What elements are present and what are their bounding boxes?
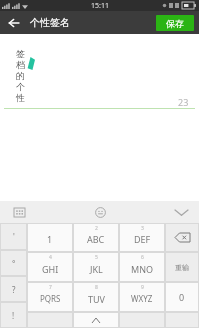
staticText: WXYZ xyxy=(131,293,153,304)
staticText: 15:11 xyxy=(91,1,109,11)
staticText: 5 xyxy=(95,254,98,261)
staticText: PQRS xyxy=(40,293,61,304)
staticText: 7 xyxy=(49,284,52,291)
staticText: 性 xyxy=(16,92,25,103)
staticText: 8 xyxy=(95,284,98,291)
staticText: 9 xyxy=(141,284,144,291)
button[interactable]: ° xyxy=(1,251,26,275)
staticText: 档 xyxy=(16,59,25,70)
button[interactable]: 7 xyxy=(28,283,72,311)
staticText: ° xyxy=(12,258,16,269)
button[interactable]: 9 xyxy=(120,283,164,311)
button[interactable]: Hide keyboard xyxy=(171,202,191,222)
staticText: 重输 xyxy=(175,263,189,272)
staticText: TUV xyxy=(88,293,105,305)
staticText: JKL xyxy=(90,263,103,275)
staticText: 0 xyxy=(179,291,185,303)
button[interactable]: ! xyxy=(1,303,26,327)
button[interactable]: 保存 xyxy=(156,15,194,31)
staticText: 个性签名 xyxy=(30,16,70,29)
staticText: DEF xyxy=(134,233,151,245)
button[interactable]: 8 xyxy=(74,283,118,311)
button[interactable]: Input method xyxy=(10,203,28,221)
staticText: ! xyxy=(12,310,15,321)
staticText: 1 xyxy=(47,233,53,245)
staticText: 个 xyxy=(16,81,25,92)
staticText: 6 xyxy=(141,254,144,261)
button[interactable] xyxy=(74,313,118,327)
staticText: 23 xyxy=(178,96,189,108)
staticText: 保存 xyxy=(166,18,184,29)
staticText: 3 xyxy=(141,225,144,232)
staticText: 4 xyxy=(49,254,52,261)
button[interactable]: ? xyxy=(1,277,26,301)
staticText: ' xyxy=(13,231,15,242)
button[interactable]: 0 xyxy=(166,283,198,311)
staticText: ABC xyxy=(87,233,105,245)
staticText: 的 xyxy=(16,70,25,81)
staticText: GHI xyxy=(42,263,59,275)
button[interactable]: ' xyxy=(1,224,26,249)
button[interactable]: 重输 xyxy=(166,253,198,281)
button[interactable]: Back xyxy=(0,11,26,34)
button[interactable]: 3 xyxy=(120,224,164,251)
button[interactable]: Emoji xyxy=(90,202,110,222)
button[interactable]: 6 xyxy=(120,253,164,281)
staticText: MNO xyxy=(131,263,154,275)
staticText: 2 xyxy=(95,225,98,232)
button[interactable]: 1 xyxy=(28,224,72,251)
button[interactable]: 2 xyxy=(74,224,118,251)
button[interactable]: 4 xyxy=(28,253,72,281)
staticText: ? xyxy=(12,284,16,295)
button[interactable]: 5 xyxy=(74,253,118,281)
staticText: 签 xyxy=(16,48,25,59)
button[interactable]: Backspace xyxy=(166,224,198,251)
